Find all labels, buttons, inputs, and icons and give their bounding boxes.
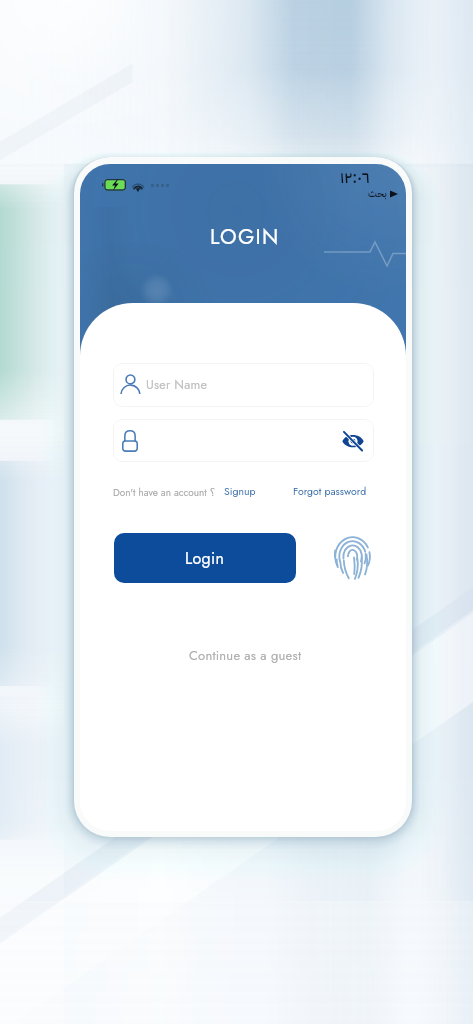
staticText: Continue as a guest bbox=[189, 646, 302, 665]
staticText: Login bbox=[185, 547, 225, 570]
button[interactable]: Continue as a guest bbox=[180, 644, 310, 666]
button[interactable]: Show password bbox=[333, 424, 373, 457]
button[interactable]: Signup bbox=[224, 484, 256, 499]
staticText: ١٢:٠٦ bbox=[340, 166, 370, 190]
staticText: Forgot password bbox=[293, 484, 367, 499]
staticText: User Name bbox=[146, 376, 208, 394]
button[interactable]: Show password bbox=[113, 419, 374, 462]
button[interactable]: Forgot password bbox=[293, 484, 367, 499]
staticText: LOGIN bbox=[210, 222, 280, 252]
staticText: بحث bbox=[368, 186, 387, 201]
button[interactable]: User Name bbox=[113, 363, 374, 407]
staticText: Signup bbox=[224, 484, 256, 499]
button[interactable]: Login with fingerprint bbox=[328, 532, 378, 586]
staticText: Don't have an account ؟ bbox=[113, 485, 215, 499]
button[interactable]: Login bbox=[114, 533, 296, 583]
